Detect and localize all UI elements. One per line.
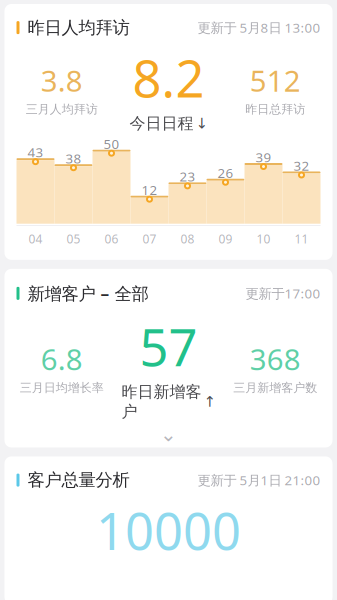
staticText: 08 (180, 231, 194, 247)
staticText: 三月人均拜访 (26, 102, 98, 116)
staticText: 新增客户 – 全部 (27, 282, 148, 305)
staticText: 昨日总拜访 (245, 102, 305, 116)
staticText: 50 (103, 135, 119, 153)
staticText: 512 (250, 61, 301, 100)
staticText: 23 (179, 167, 195, 185)
staticText: 更新于 5月8日 13:00 (197, 19, 320, 36)
staticText: ↓ (195, 115, 207, 132)
staticText: ↑ (203, 393, 215, 410)
staticText: ⌄ (160, 423, 177, 446)
staticText: 3.8 (41, 61, 83, 100)
staticText: 更新于17:00 (245, 284, 320, 302)
staticText: 12 (141, 181, 157, 199)
staticText: 43 (27, 143, 43, 161)
staticText: 39 (255, 148, 271, 166)
staticText: 09 (218, 231, 232, 247)
staticText: 6.8 (41, 339, 83, 378)
staticText: 57 (139, 313, 197, 380)
staticText: 10000 (96, 497, 241, 564)
staticText: 07 (142, 231, 156, 247)
staticText: 32 (293, 157, 309, 174)
staticText: 368 (250, 339, 301, 378)
staticText: 更新于 5月1日 21:00 (197, 471, 320, 489)
staticText: 06 (104, 231, 118, 247)
staticText: 04 (28, 231, 42, 247)
staticText: 三月日均增长率 (20, 380, 104, 395)
staticText: 客户总量分析 (27, 469, 129, 491)
staticText: 昨日人均拜访 (27, 17, 129, 38)
staticText: 11 (294, 231, 308, 247)
staticText: 26 (217, 164, 233, 182)
staticText: 今日日程 (129, 114, 193, 133)
staticText: 38 (65, 149, 81, 167)
staticText: 三月新增客户数 (233, 380, 317, 395)
staticText: 昨日新增客户 (121, 382, 201, 421)
staticText: 05 (66, 231, 80, 247)
staticText: 10 (256, 231, 270, 247)
staticText: 8.2 (132, 44, 204, 112)
